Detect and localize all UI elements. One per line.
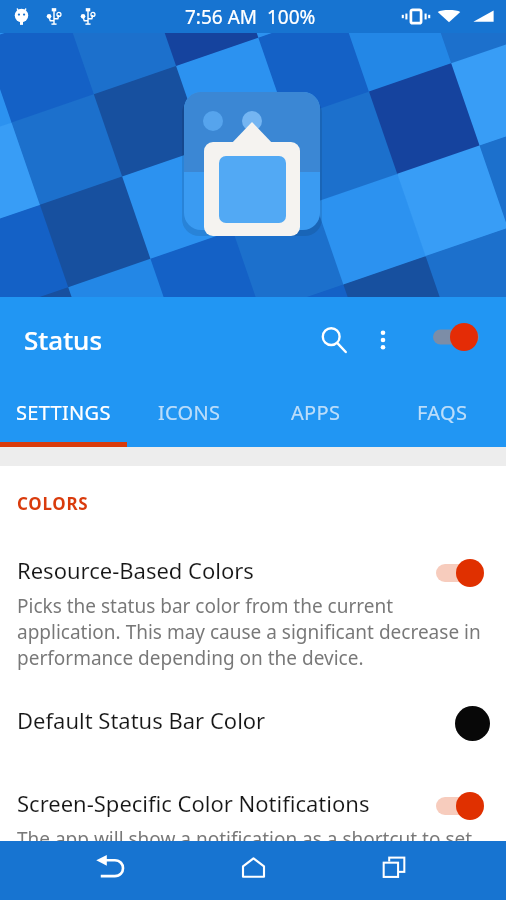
button[interactable]: Resource-Based Colors <box>0 555 506 671</box>
button[interactable]: Default Status Bar Color <box>0 705 506 741</box>
button[interactable]: Screen-Specific Color Notifications <box>0 788 506 852</box>
staticText: APPS <box>291 399 341 426</box>
staticText: Screen-Specific Color Notifications <box>17 788 370 818</box>
staticText: Resource-Based Colors <box>17 555 254 585</box>
staticText: COLORS <box>17 492 89 515</box>
button[interactable]: Home <box>224 841 282 893</box>
staticText: SETTINGS <box>16 399 111 426</box>
button[interactable]: SETTINGS <box>0 377 126 447</box>
staticText: Status <box>24 322 103 357</box>
staticText: ICONS <box>158 399 221 426</box>
button[interactable]: More options <box>361 318 405 362</box>
button[interactable]: FAQS <box>379 377 506 447</box>
button[interactable]: Search <box>310 316 358 364</box>
staticText: The app will show a notification as a sh… <box>17 826 473 852</box>
button[interactable]: ICONS <box>126 377 252 447</box>
staticText: Picks the status bar color from the curr… <box>17 593 492 671</box>
button[interactable]: Toggle status bar <box>423 314 489 360</box>
staticText: FAQS <box>417 399 468 426</box>
button[interactable]: Back <box>82 841 140 893</box>
staticText: Default Status Bar Color <box>17 705 266 735</box>
button[interactable]: APPS <box>252 377 379 447</box>
staticText: 7:56 AM 100% <box>185 4 316 30</box>
button[interactable]: Recents <box>365 841 423 893</box>
